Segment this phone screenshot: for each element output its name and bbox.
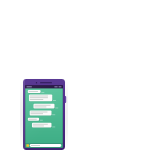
button[interactable]: Smartphone showing a chat conversation: [16, 70, 72, 150]
